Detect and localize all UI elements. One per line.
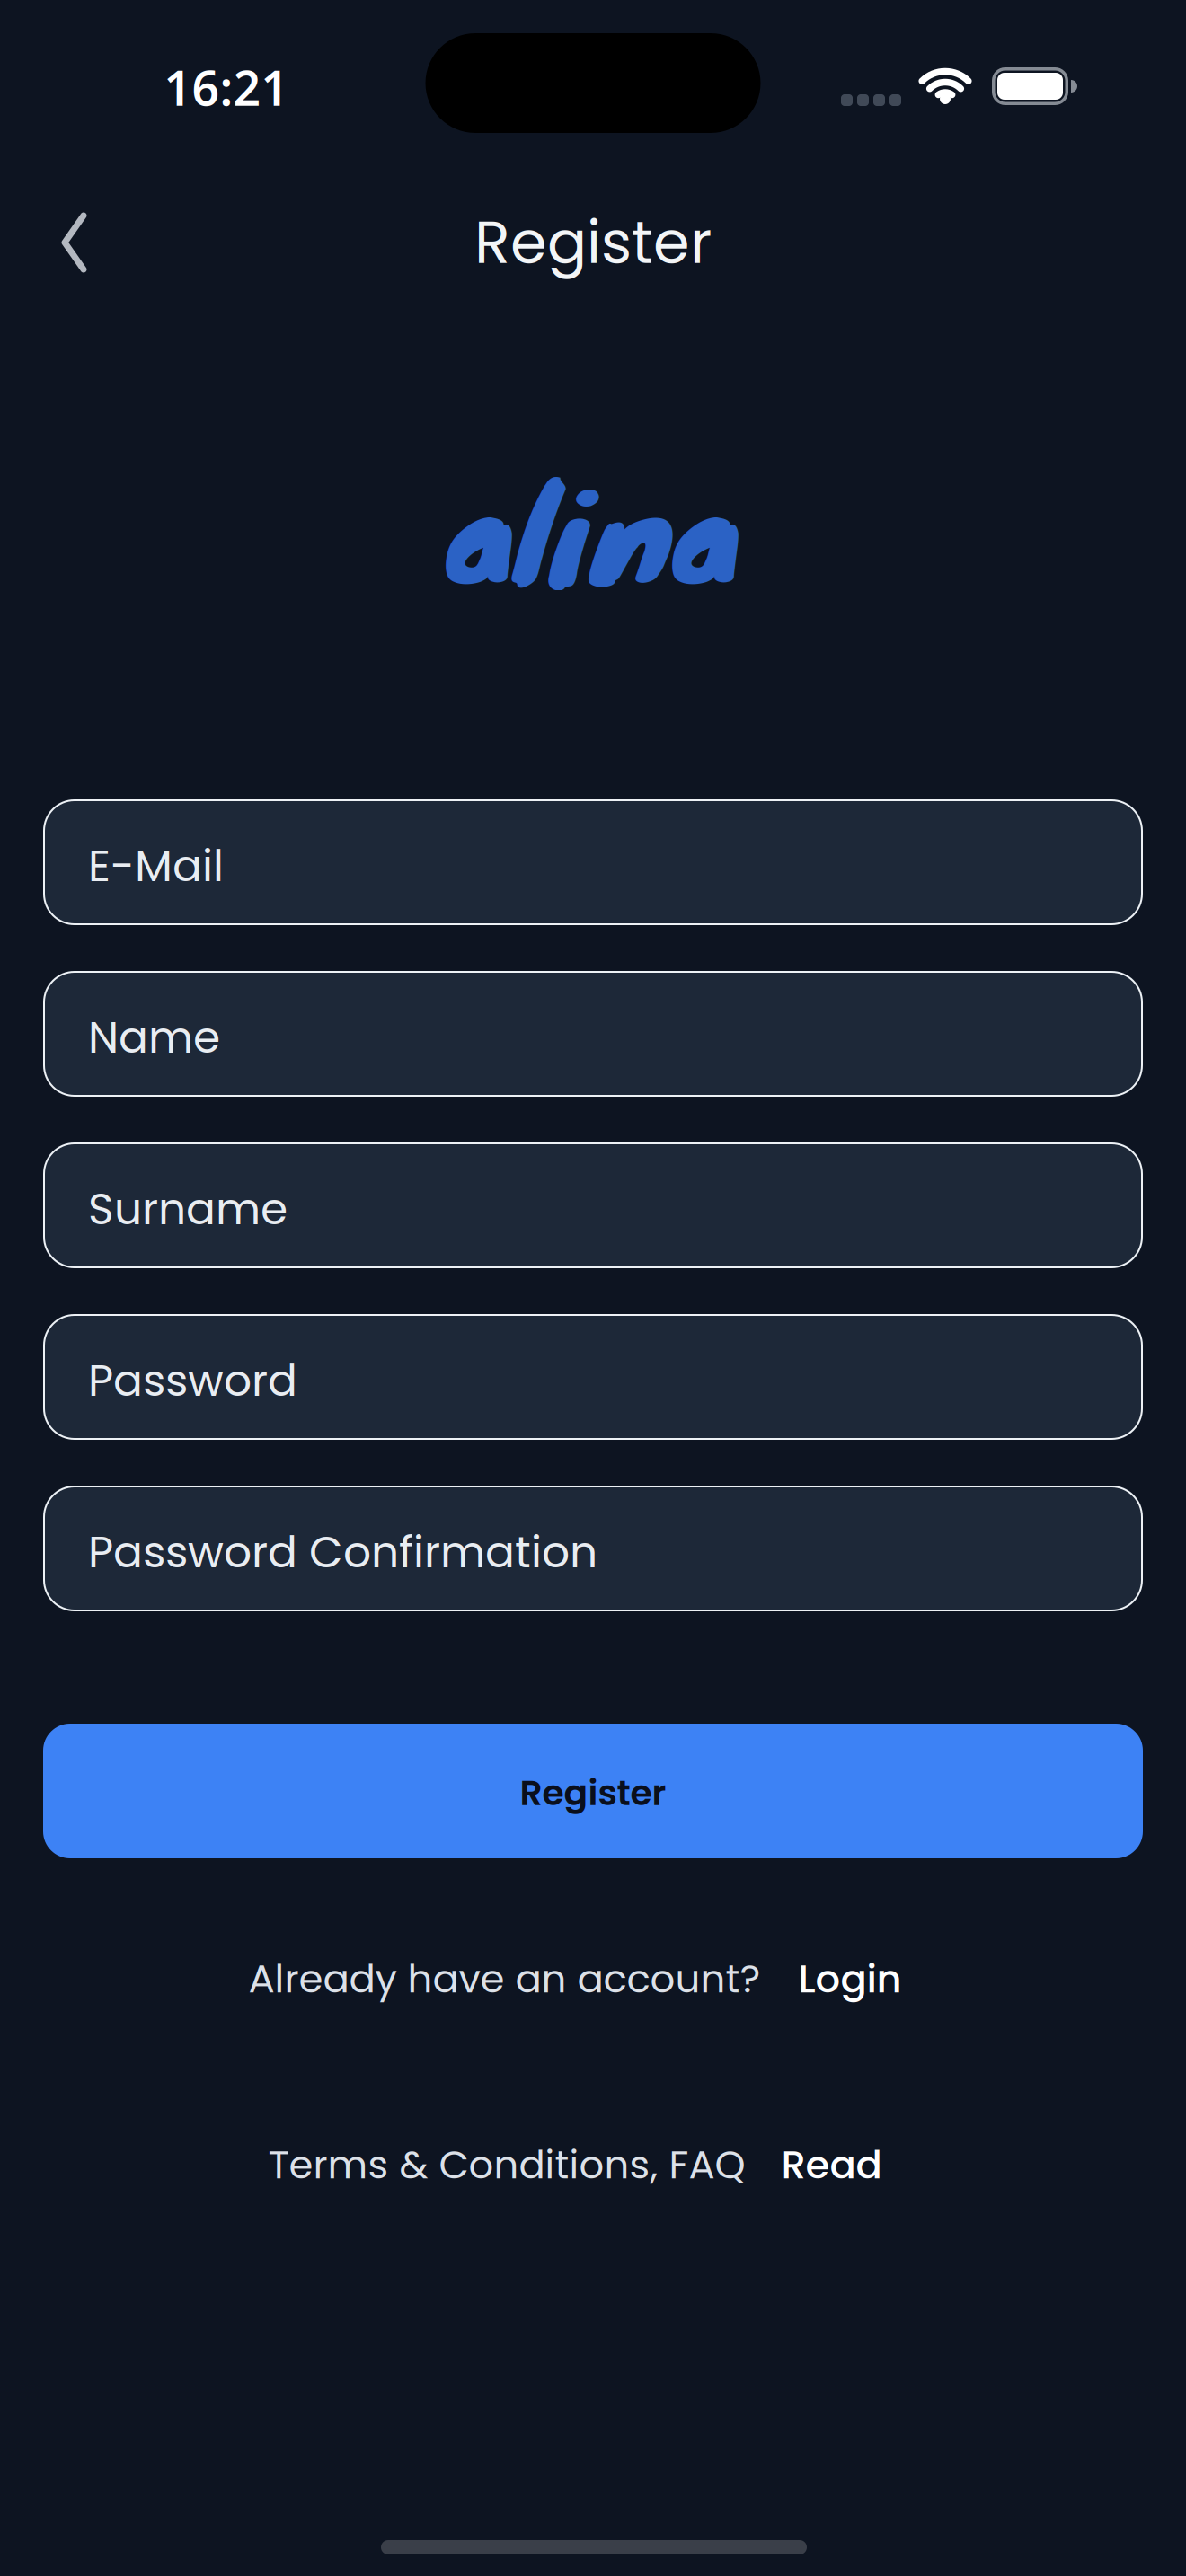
button[interactable]: E-Mail — [43, 799, 1143, 925]
button[interactable]: Read — [781, 2137, 882, 2192]
staticText: 16:21 — [164, 55, 289, 119]
staticText: Password Confirmation — [88, 1521, 597, 1583]
staticText: E-Mail — [88, 835, 224, 896]
staticText: Password — [88, 1350, 297, 1411]
button[interactable]: Login — [798, 1951, 902, 2006]
button[interactable]: Register — [43, 1724, 1143, 1858]
staticText: Read — [781, 2137, 882, 2192]
staticText: Name — [88, 1007, 220, 1068]
button[interactable]: Surname — [43, 1142, 1143, 1268]
staticText: Register — [520, 1768, 666, 1818]
staticText: Terms & Conditions, FAQ — [268, 2137, 745, 2192]
staticText: Login — [798, 1951, 902, 2006]
button[interactable]: Password — [43, 1314, 1143, 1440]
staticText: alina — [446, 431, 740, 627]
staticText: Already have an account? — [248, 1951, 761, 2006]
button[interactable]: Back — [55, 208, 94, 277]
button[interactable]: Password Confirmation — [43, 1486, 1143, 1611]
button[interactable]: Name — [43, 971, 1143, 1097]
staticText: Surname — [88, 1178, 288, 1239]
staticText: Register — [474, 201, 712, 284]
